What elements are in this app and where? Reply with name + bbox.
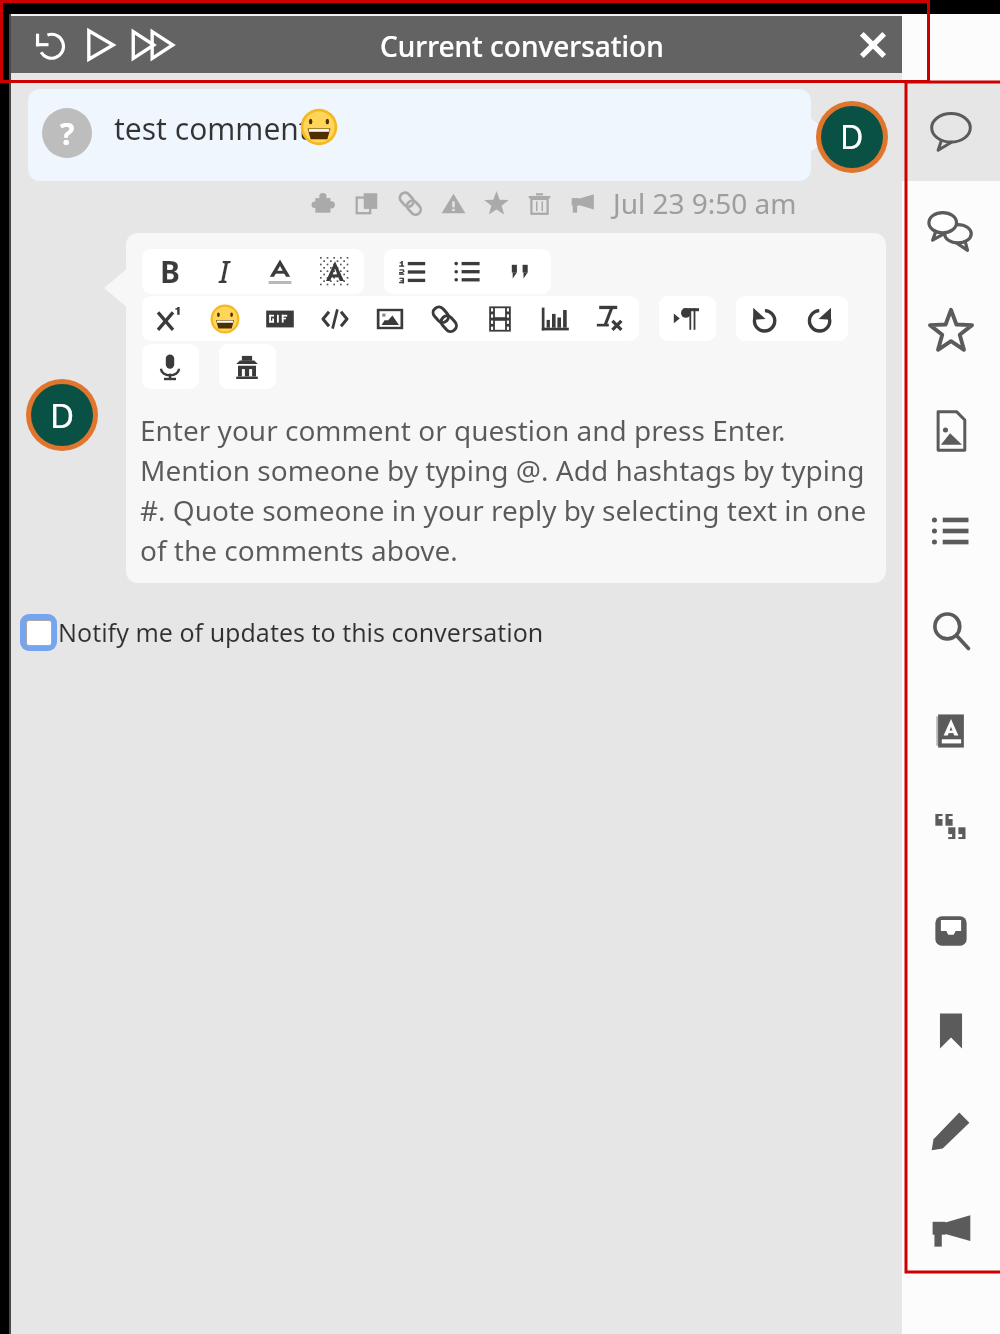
button[interactable]: Superscript: [142, 296, 197, 341]
button[interactable]: Glossary: [902, 681, 1000, 781]
button[interactable]: Close: [848, 20, 898, 70]
staticText: B: [160, 251, 180, 292]
button[interactable]: Text direction: [659, 296, 714, 341]
staticText: Enter your comment or question and press…: [140, 411, 880, 570]
button[interactable]: Announce: [561, 184, 604, 222]
button[interactable]: Emoji: [197, 296, 252, 341]
button[interactable]: Insert element: [303, 184, 346, 222]
staticText: D: [50, 393, 75, 438]
button[interactable]: Delete: [518, 184, 561, 222]
button[interactable]: Discussions: [902, 181, 1000, 281]
button[interactable]: Copy: [346, 184, 389, 222]
button[interactable]: Italic: [197, 249, 252, 294]
button[interactable]: Attachments: [902, 381, 1000, 481]
staticText: test comment: [114, 108, 310, 149]
button[interactable]: Quote: [494, 249, 549, 294]
staticText: Notify me of updates to this conversatio…: [58, 615, 544, 649]
button[interactable]: Undo: [736, 296, 791, 341]
staticText: Current conversation: [380, 27, 664, 65]
button[interactable]: Underline: [252, 249, 307, 294]
button[interactable]: Link: [417, 296, 472, 341]
staticText: Jul 23 9:50 am: [613, 184, 797, 222]
button[interactable]: Institution: [219, 344, 274, 389]
button[interactable]: Video: [472, 296, 527, 341]
button[interactable]: Undo: [23, 19, 75, 71]
button[interactable]: Clear formatting: [582, 296, 637, 341]
button[interactable]: Text colour: [307, 249, 362, 294]
button[interactable]: Report: [432, 184, 475, 222]
button[interactable]: Bullet list: [439, 249, 494, 294]
button[interactable]: Search: [902, 581, 1000, 681]
button[interactable]: Code: [307, 296, 362, 341]
staticText: I: [219, 251, 230, 292]
button[interactable]: GIF: [252, 296, 307, 341]
button[interactable]: Inbox: [902, 881, 1000, 981]
button[interactable]: Favorite: [475, 184, 518, 222]
button[interactable]: Link: [389, 184, 432, 222]
button[interactable]: Edit: [902, 1081, 1000, 1181]
button[interactable]: Image: [362, 296, 417, 341]
button[interactable]: Fast forward: [127, 19, 179, 71]
button[interactable]: Redo: [791, 296, 846, 341]
button[interactable]: Play: [75, 19, 127, 71]
button[interactable]: Quotes: [902, 781, 1000, 881]
button[interactable]: Outline: [902, 481, 1000, 581]
button[interactable]: Favorites: [902, 281, 1000, 381]
button[interactable]: Bold: [142, 249, 197, 294]
button[interactable]: Notify me of updates to this conversatio…: [20, 613, 544, 651]
staticText: ?: [60, 113, 75, 154]
button[interactable]: Bookmarks: [902, 981, 1000, 1081]
button[interactable]: Numbered list: [384, 249, 439, 294]
button[interactable]: Comments: [902, 81, 1000, 181]
button[interactable]: Chart: [527, 296, 582, 341]
staticText: D: [840, 115, 864, 159]
button[interactable]: Dictate: [142, 344, 197, 389]
button[interactable]: Announcements: [902, 1181, 1000, 1281]
